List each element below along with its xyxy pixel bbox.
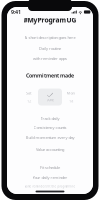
staticText: Commitment made [26, 72, 74, 79]
staticText: Track daily [40, 116, 59, 121]
staticText: with reminder apps [33, 56, 67, 61]
staticText: Daily routine [39, 46, 61, 51]
staticText: 12 [27, 98, 31, 104]
staticText: #MyProgramUG [23, 16, 76, 24]
staticText: Build momentum every day [25, 135, 74, 140]
staticText: Your daily reminder [32, 175, 67, 180]
button[interactable]: DONE [38, 88, 62, 105]
staticText: Some reminders fit the program fine [24, 185, 75, 188]
staticText: Fit schedule [40, 165, 60, 170]
staticText: 14 [69, 98, 73, 104]
staticText: 9:41 [11, 8, 21, 16]
staticText: A short description goes here [24, 35, 75, 40]
staticText: Consistency counts [33, 125, 66, 130]
staticText: Value accounting [36, 147, 64, 152]
staticText: Sat [26, 90, 32, 96]
staticText: DONE [46, 98, 53, 102]
staticText: Mon [66, 90, 75, 96]
